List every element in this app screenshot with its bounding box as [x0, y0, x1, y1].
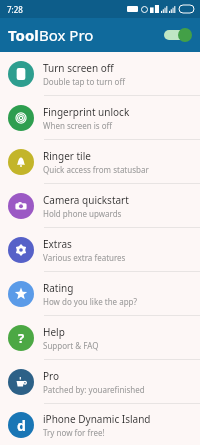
staticText: Rating: [43, 281, 74, 295]
staticText: 7:28: [7, 4, 23, 15]
staticText: ?: [18, 329, 25, 347]
button[interactable]: [162, 26, 192, 44]
staticText: Various extra features: [43, 252, 126, 263]
staticText: Fingerprint unlock: [43, 105, 130, 119]
staticText: Support & FAQ: [43, 340, 99, 351]
staticText: Tool: [8, 25, 39, 45]
staticText: Help: [43, 325, 65, 339]
button[interactable]: Ringer tile: [0, 140, 200, 183]
staticText: Box Pro: [39, 25, 94, 45]
staticText: Hold phone upwards: [43, 208, 122, 219]
staticText: Camera quickstart: [43, 193, 129, 207]
staticText: Try now for free!: [43, 427, 105, 438]
staticText: iPhone Dynamic Island: [43, 412, 151, 426]
staticText: Turn screen off: [43, 61, 114, 75]
staticText: Extras: [43, 237, 72, 251]
button[interactable]: Fingerprint unlock: [0, 96, 200, 139]
staticText: Double tap to turn off: [43, 76, 125, 87]
staticText: When screen is off: [43, 120, 113, 131]
staticText: How do you like the app?: [43, 296, 137, 307]
button[interactable]: Rating: [0, 272, 200, 315]
button[interactable]: ?: [0, 316, 200, 359]
staticText: Pro: [43, 369, 60, 383]
button[interactable]: Turn screen off: [0, 52, 200, 95]
button[interactable]: Camera quickstart: [0, 184, 200, 227]
button[interactable]: Pro: [0, 360, 200, 403]
button[interactable]: d: [0, 404, 200, 445]
staticText: Quick access from statusbar: [43, 164, 149, 175]
button[interactable]: Extras: [0, 228, 200, 271]
staticText: d: [17, 416, 26, 435]
staticText: Patched by: youarefinished: [43, 384, 145, 395]
staticText: Ringer tile: [43, 149, 91, 163]
